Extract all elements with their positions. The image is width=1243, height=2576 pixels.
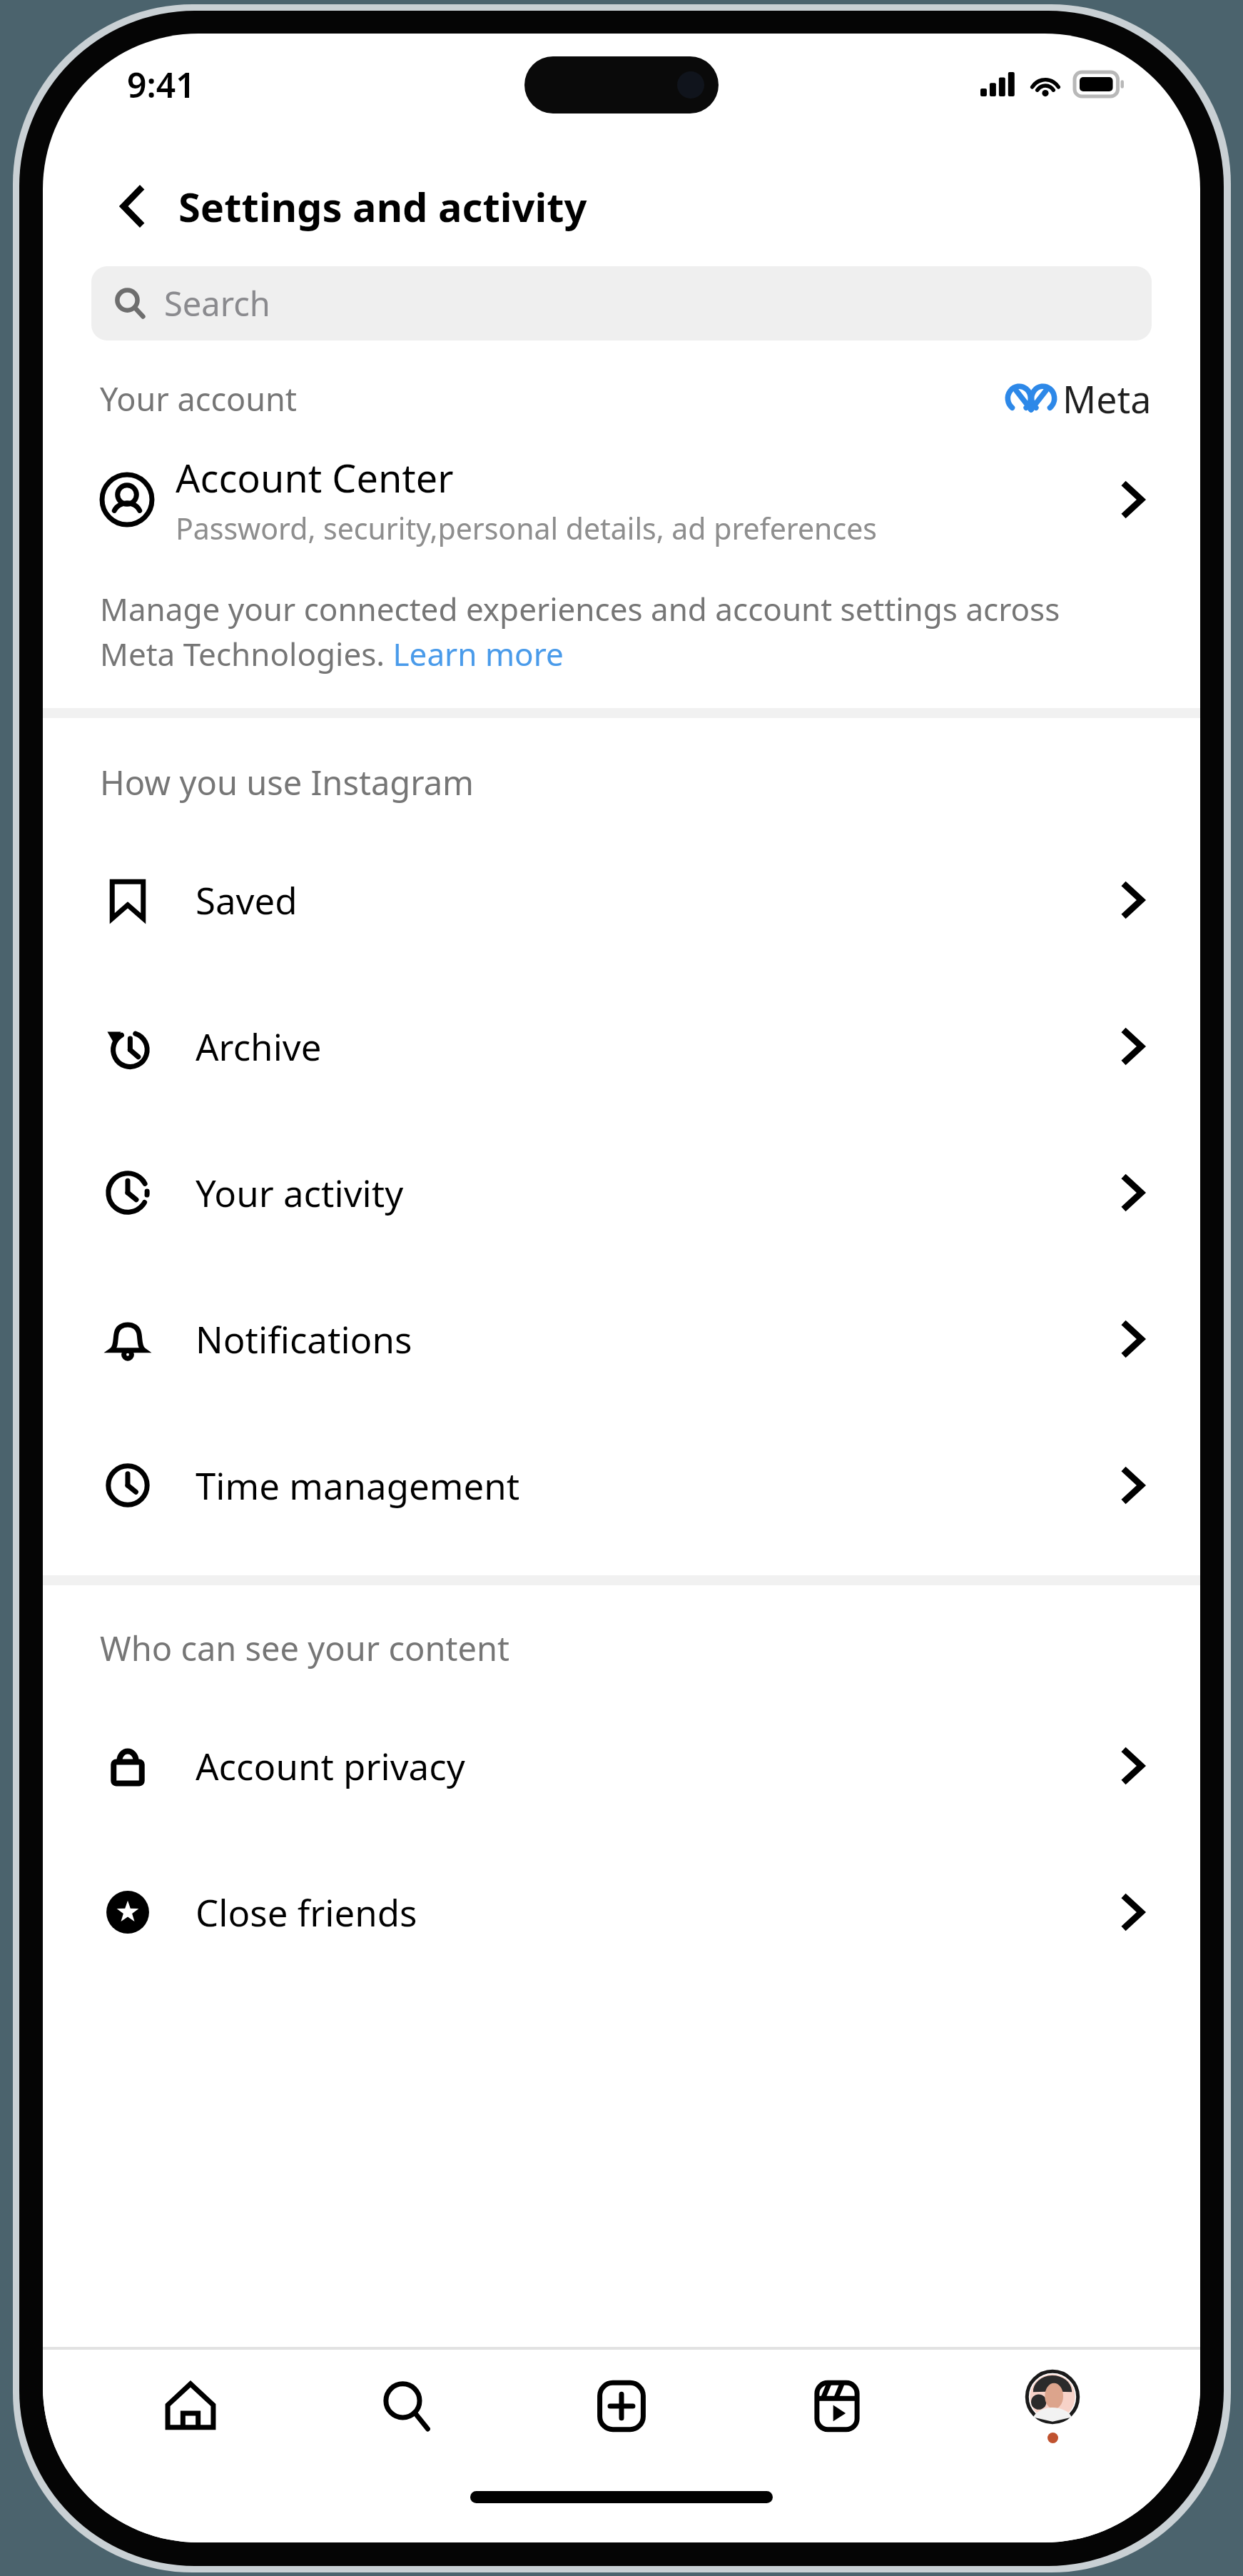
staticText: 9:41 bbox=[127, 61, 196, 108]
button[interactable]: Your activity bbox=[43, 1119, 1200, 1266]
staticText: Account privacy bbox=[196, 1741, 465, 1790]
staticText: Who can see your content bbox=[100, 1625, 509, 1671]
button[interactable]: Back bbox=[98, 172, 167, 241]
button[interactable]: Manage your connected experiences and ac… bbox=[100, 587, 1107, 675]
button[interactable]: Search bbox=[91, 266, 1152, 340]
staticText: Settings and activity bbox=[178, 179, 587, 233]
staticText: Time management bbox=[196, 1460, 520, 1510]
button[interactable]: Reels bbox=[729, 2350, 945, 2463]
button[interactable]: Account privacy bbox=[43, 1692, 1200, 1839]
button[interactable]: Home bbox=[83, 2350, 298, 2463]
staticText: Your account bbox=[100, 377, 298, 420]
button[interactable]: Time management bbox=[43, 1412, 1200, 1558]
staticText: Your activity bbox=[196, 1168, 404, 1217]
staticText: Account Center bbox=[176, 451, 454, 504]
staticText: Saved bbox=[196, 875, 298, 924]
button[interactable]: Profile bbox=[945, 2350, 1160, 2463]
staticText: Password, security,personal details, ad … bbox=[176, 508, 877, 548]
staticText: Close friends bbox=[196, 1887, 417, 1936]
staticText: Archive bbox=[196, 1021, 322, 1071]
button[interactable]: Notifications bbox=[43, 1266, 1200, 1412]
button[interactable]: Search bbox=[298, 2350, 514, 2463]
button[interactable]: Create bbox=[514, 2350, 729, 2463]
staticText: How you use Instagram bbox=[100, 759, 474, 805]
button[interactable]: Account Center bbox=[43, 425, 1200, 575]
button[interactable]: Close friends bbox=[43, 1839, 1200, 1985]
staticText: Meta bbox=[1062, 373, 1152, 424]
button[interactable]: Saved bbox=[43, 827, 1200, 973]
staticText: Notifications bbox=[196, 1314, 412, 1363]
button[interactable]: Archive bbox=[43, 973, 1200, 1119]
staticText: Search bbox=[164, 281, 270, 326]
